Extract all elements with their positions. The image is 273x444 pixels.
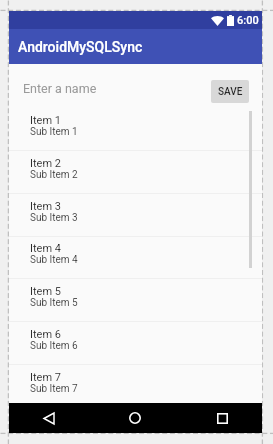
staticText: Sub Item 2 [30, 169, 78, 181]
staticText: Sub Item 6 [30, 340, 78, 352]
button[interactable]: Enter a name [23, 81, 97, 96]
staticText: Item 3 [30, 200, 61, 213]
button[interactable]: Item 2 [9, 151, 262, 194]
staticText: SAVE [218, 86, 243, 98]
staticText: Item 2 [30, 157, 61, 170]
button[interactable]: Item 3 [9, 194, 262, 237]
staticText: Item 7 [30, 371, 61, 384]
staticText: Item 6 [30, 328, 61, 341]
button[interactable]: Item 5 [9, 279, 262, 322]
staticText: Sub Item 4 [30, 254, 78, 266]
button[interactable]: SAVE [211, 80, 249, 103]
button[interactable]: Item 1 [9, 108, 262, 151]
staticText: Item 1 [30, 114, 61, 127]
button[interactable]: Recent apps [204, 403, 240, 433]
staticText: Sub Item 5 [30, 297, 78, 309]
button[interactable]: Home [117, 403, 153, 433]
staticText: AndroidMySQLSync [18, 39, 143, 55]
staticText: Sub Item 3 [30, 212, 78, 224]
button[interactable]: Item 6 [9, 322, 262, 365]
button[interactable]: Back [31, 403, 67, 433]
staticText: Item 4 [30, 242, 61, 255]
staticText: Sub Item 1 [30, 126, 78, 138]
staticText: Item 5 [30, 285, 61, 298]
staticText: Sub Item 7 [30, 383, 78, 395]
button[interactable]: Item 7 [9, 365, 262, 403]
staticText: 6:00 [237, 14, 259, 27]
button[interactable]: Item 4 [9, 236, 262, 279]
